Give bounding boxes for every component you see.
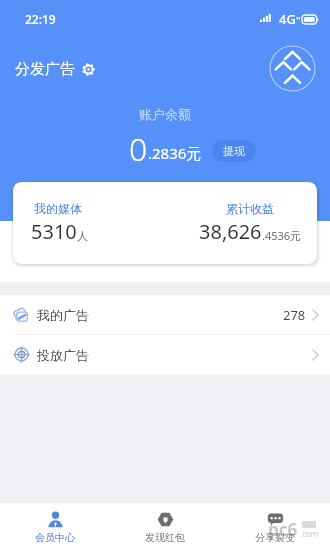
staticText: 账户余额 [139, 106, 191, 122]
staticText: 累计收益 [226, 201, 274, 216]
button[interactable]: 发现红包 [110, 503, 220, 550]
staticText: 发现红包 [145, 531, 185, 544]
button[interactable]: 分享裂变 [220, 503, 330, 550]
staticText: 人 [77, 229, 88, 243]
staticText: 我的广告 [37, 307, 89, 323]
staticText: 4G [279, 10, 296, 28]
button[interactable]: 投放广告 [0, 335, 330, 374]
staticText: .2836元 [148, 143, 202, 163]
staticText: 投放广告 [37, 347, 89, 363]
staticText: 38,626 [199, 218, 262, 245]
staticText: 22:19 [25, 11, 56, 27]
staticText: 0 [129, 127, 148, 171]
button[interactable]: Settings [82, 63, 95, 76]
button[interactable]: 我的媒体 [13, 182, 317, 264]
staticText: 我的媒体 [34, 201, 82, 216]
staticText: .4536元 [262, 228, 302, 243]
staticText: 278 [283, 306, 306, 324]
staticText: 5310 [31, 218, 77, 245]
staticText: 会员中心 [35, 531, 75, 544]
button[interactable]: App logo [269, 45, 316, 92]
staticText: 分享裂变 [255, 531, 295, 544]
button[interactable]: 提现 [212, 140, 256, 162]
staticText: 分发广告 [15, 60, 75, 79]
button[interactable]: 我的广告 [0, 295, 330, 334]
button[interactable]: 会员中心 [0, 503, 110, 550]
staticText: pc6 [268, 518, 298, 541]
staticText: .com [300, 528, 319, 539]
staticText: 提现 [223, 144, 245, 158]
